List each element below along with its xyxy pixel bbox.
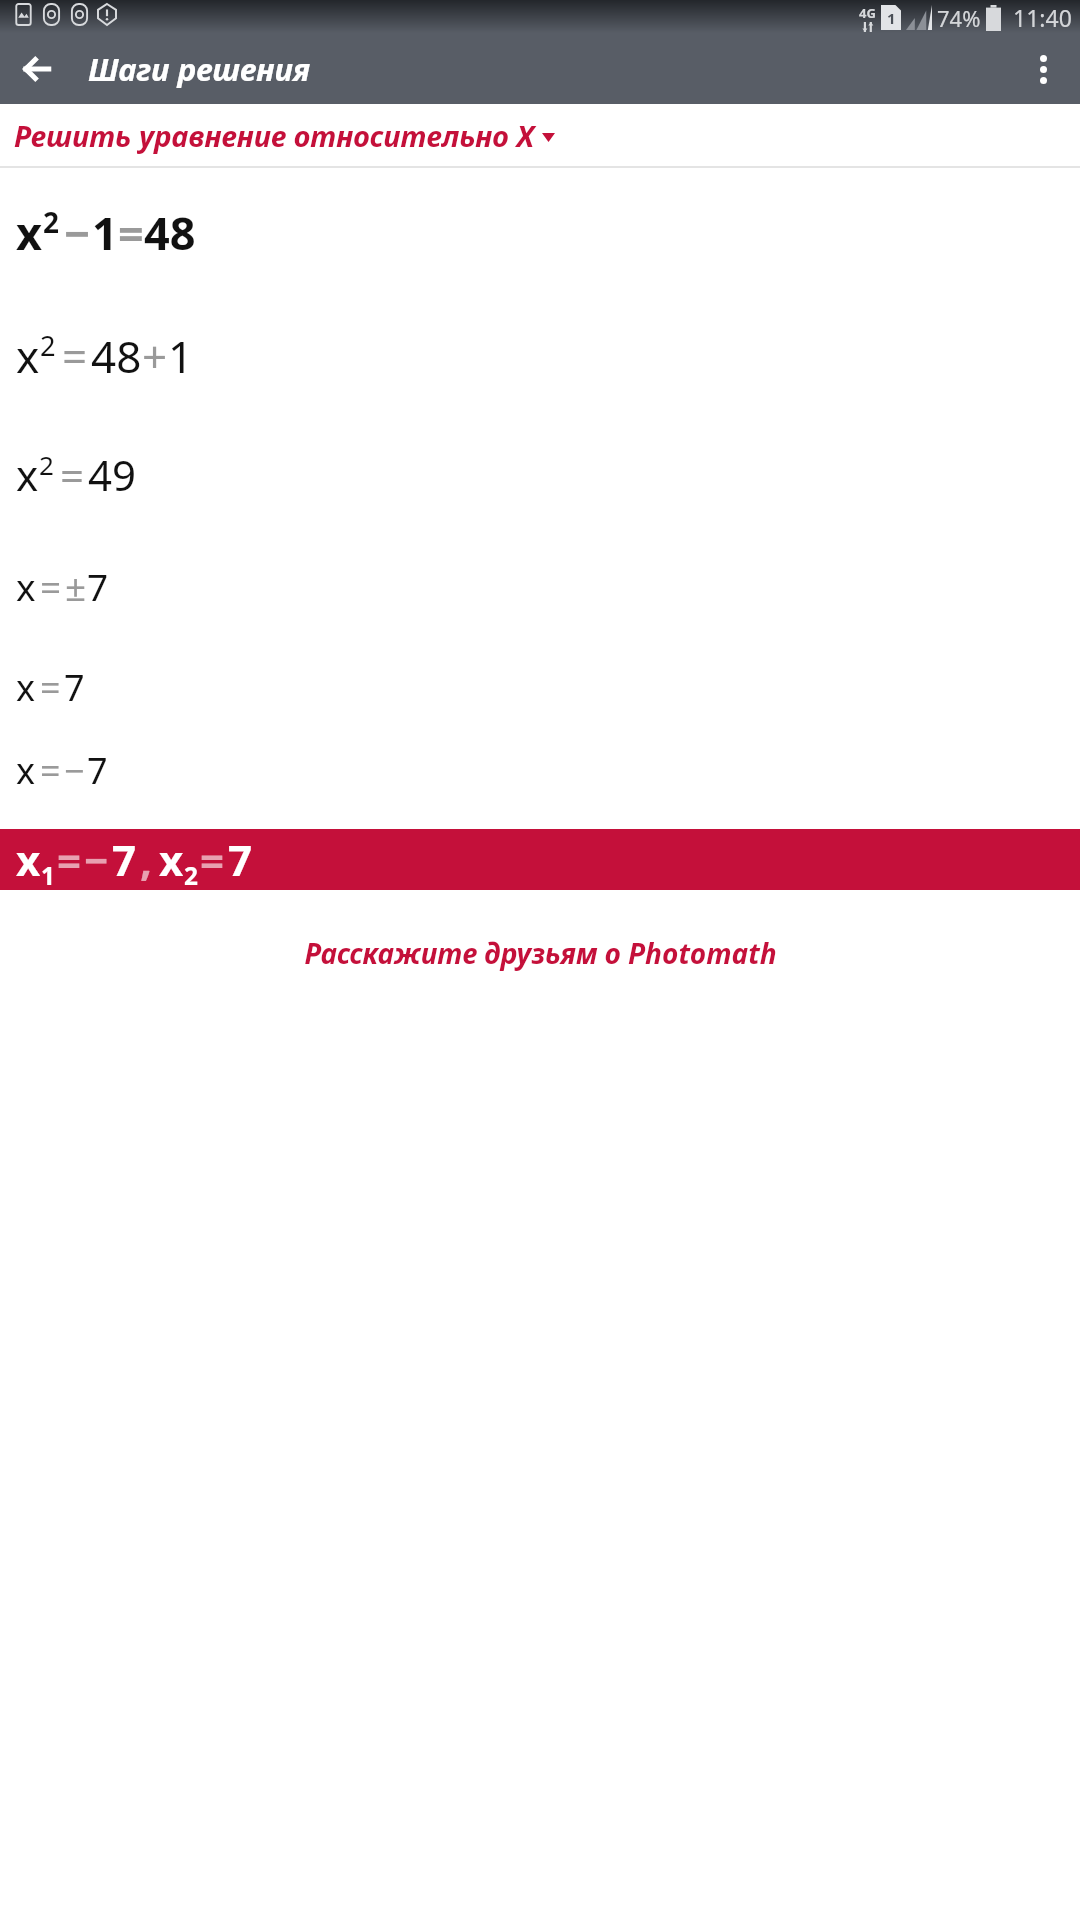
staticText: , <box>140 831 152 888</box>
staticText: + <box>142 326 168 386</box>
staticText: 2 <box>184 859 198 892</box>
staticText: 7 <box>228 831 253 888</box>
button[interactable]: x <box>0 829 1080 890</box>
staticText: 1 <box>41 859 55 892</box>
staticText: = <box>40 663 61 712</box>
staticText: 1 <box>168 326 194 386</box>
staticText: = <box>40 561 62 611</box>
staticText: x <box>16 746 36 795</box>
staticText: Шаги решения <box>88 48 311 90</box>
button[interactable]: More options <box>1016 42 1070 96</box>
staticText: 2 <box>40 327 56 364</box>
button[interactable]: Back <box>10 42 64 96</box>
staticText: 1 <box>92 202 118 263</box>
staticText: = <box>62 326 88 386</box>
staticText: 2 <box>43 203 59 241</box>
staticText: 74% <box>937 3 981 33</box>
staticText: 7 <box>87 561 109 611</box>
staticText: 7 <box>112 831 137 888</box>
staticText: 49 <box>88 446 137 503</box>
staticText: = <box>200 831 225 888</box>
staticText: = <box>60 446 85 503</box>
staticText: x <box>16 202 43 263</box>
staticText: = <box>40 746 61 795</box>
staticText: − <box>64 746 85 795</box>
staticText: x <box>16 561 36 611</box>
staticText: 4G <box>859 4 876 22</box>
staticText: ± <box>65 561 87 611</box>
staticText: 1 <box>887 8 896 28</box>
staticText: x <box>16 326 40 386</box>
staticText: 2 <box>39 447 54 482</box>
staticText: 48 <box>91 326 142 386</box>
button[interactable]: Расскажите друзьям о Photomath <box>0 934 1080 972</box>
staticText: = <box>118 202 144 263</box>
staticText: x <box>16 831 41 888</box>
staticText: 48 <box>144 202 196 263</box>
button[interactable]: Решить уравнение относительно X <box>0 104 1080 166</box>
staticText: 11:40 <box>1013 2 1072 33</box>
staticText: x <box>16 663 36 712</box>
staticText: x <box>16 446 39 503</box>
staticText: x <box>159 831 184 888</box>
staticText: 7 <box>64 663 85 712</box>
staticText: − <box>64 202 91 263</box>
staticText: Расскажите друзьям о Photomath <box>304 934 777 972</box>
staticText: Решить уравнение относительно X <box>14 116 535 155</box>
staticText: 7 <box>87 746 108 795</box>
staticText: = <box>57 831 82 888</box>
staticText: − <box>84 831 109 888</box>
